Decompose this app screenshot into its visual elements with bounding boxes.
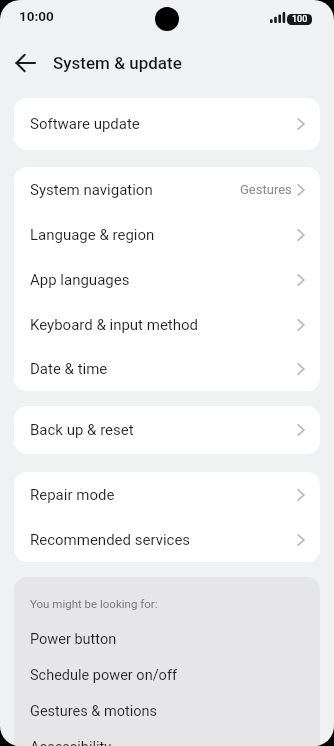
staticText: System & update (53, 53, 182, 73)
button[interactable]: Accessibility (14, 729, 320, 746)
button[interactable]: Schedule power on/off (14, 657, 320, 693)
staticText: Gestures (240, 182, 292, 197)
button[interactable]: App languages (14, 257, 320, 302)
button[interactable]: Software update (14, 98, 320, 150)
staticText: Language & region (30, 226, 155, 244)
button[interactable]: Back up & reset (14, 406, 320, 454)
button[interactable] (8, 52, 44, 76)
staticText: Recommended services (30, 531, 191, 549)
button[interactable]: Keyboard & input method (14, 302, 320, 347)
button[interactable]: Repair mode (14, 472, 320, 517)
staticText: Power button (30, 631, 117, 648)
button[interactable]: Gestures & motions (14, 693, 320, 729)
staticText: 10:00 (19, 8, 54, 24)
button[interactable]: System navigation (14, 167, 320, 212)
staticText: App languages (30, 271, 130, 289)
staticText: Back up & reset (30, 421, 134, 439)
button[interactable]: Power button (14, 621, 320, 657)
button[interactable]: Language & region (14, 212, 320, 257)
staticText: Date & time (30, 360, 108, 378)
staticText: You might be looking for: (30, 597, 158, 610)
staticText: Accessibility (30, 739, 112, 746)
staticText: Gestures & motions (30, 703, 157, 720)
button[interactable]: Date & time (14, 347, 320, 391)
staticText: Schedule power on/off (30, 667, 177, 684)
staticText: 100 (292, 14, 308, 25)
staticText: Repair mode (30, 486, 115, 504)
staticText: System navigation (30, 181, 153, 199)
button[interactable]: Recommended services (14, 517, 320, 562)
staticText: Software update (30, 115, 140, 133)
staticText: Keyboard & input method (30, 316, 199, 334)
